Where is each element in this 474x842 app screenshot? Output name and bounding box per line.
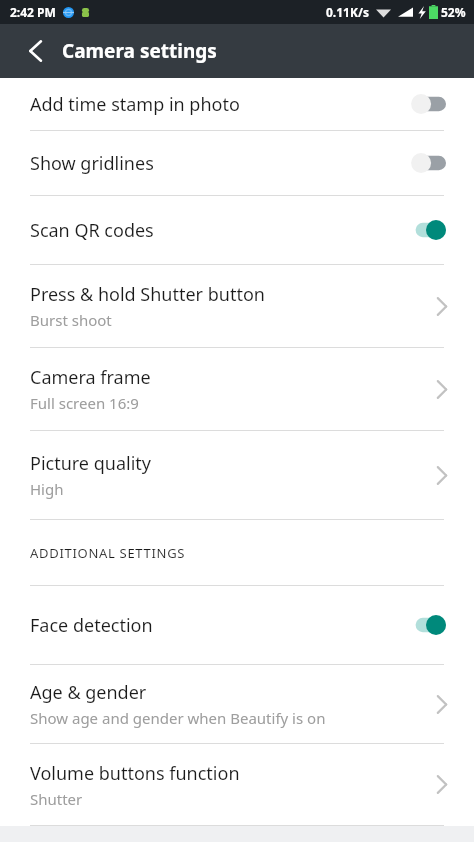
staticText: Age & gender	[30, 680, 147, 705]
staticText: Shutter	[30, 789, 83, 809]
button[interactable]: Show gridlines	[0, 131, 474, 195]
staticText: Camera frame	[30, 365, 151, 390]
staticText: High	[30, 479, 64, 499]
button[interactable]: Volume buttons function	[0, 744, 474, 825]
staticText: Burst shoot	[30, 310, 112, 330]
staticText: 0.11K/s	[326, 4, 369, 20]
staticText: Camera settings	[62, 38, 217, 64]
staticText: Show gridlines	[30, 151, 408, 176]
staticText: Volume buttons function	[30, 761, 240, 786]
button[interactable]: Press & hold Shutter button	[0, 265, 474, 347]
staticText: 52%	[441, 4, 466, 20]
button[interactable]: Add time stamp in photo	[0, 78, 474, 130]
staticText: Add time stamp in photo	[30, 92, 408, 117]
staticText: Scan QR codes	[30, 218, 408, 243]
staticText: Show age and gender when Beautify is on	[30, 708, 326, 728]
staticText: ADDITIONAL SETTINGS	[30, 544, 186, 562]
staticText: Press & hold Shutter button	[30, 282, 265, 307]
staticText: Face detection	[30, 613, 408, 638]
staticText: Picture quality	[30, 451, 151, 476]
button[interactable]: Camera frame	[0, 348, 474, 430]
button[interactable]: Face detection	[0, 586, 474, 664]
button[interactable]: Back	[14, 30, 56, 72]
button[interactable]: Scan QR codes	[0, 196, 474, 264]
button[interactable]: Picture quality	[0, 431, 474, 519]
button[interactable]: Age & gender	[0, 665, 474, 743]
staticText: 2:42 PM	[10, 4, 56, 20]
staticText: Full screen 16:9	[30, 393, 139, 413]
